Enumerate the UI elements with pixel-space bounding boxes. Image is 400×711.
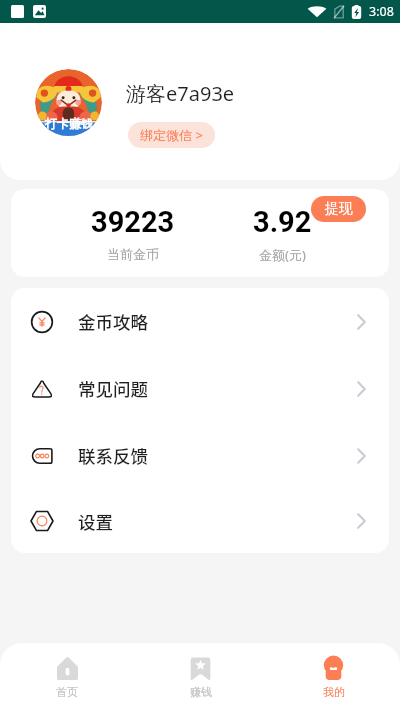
staticText: 3:08 <box>369 3 394 20</box>
staticText: 打卡赚钱 <box>45 116 93 131</box>
button[interactable]: 提现 <box>311 196 366 222</box>
button[interactable]: 常见问题 <box>11 355 389 422</box>
button[interactable]: 首页 <box>0 643 134 699</box>
button[interactable]: 赚钱 <box>134 643 267 699</box>
staticText: 赚钱 <box>190 685 212 699</box>
button[interactable]: 我的 <box>267 643 400 699</box>
staticText: 3.92 <box>253 205 312 239</box>
staticText: 首页 <box>56 685 78 699</box>
button[interactable]: 设置 <box>11 489 389 553</box>
staticText: 常见问题 <box>78 376 148 401</box>
staticText: 金币攻略 <box>78 309 148 334</box>
staticText: 绑定微信 > <box>140 126 203 144</box>
staticText: 39223 <box>91 205 175 239</box>
staticText: 游客e7a93e <box>126 80 235 107</box>
button[interactable]: 联系反馈 <box>11 422 389 489</box>
staticText: 联系反馈 <box>78 443 148 468</box>
staticText: 设置 <box>78 509 113 534</box>
button[interactable]: 绑定微信 > <box>128 122 215 148</box>
staticText: 金额(元) <box>259 246 306 264</box>
staticText: 提现 <box>325 200 353 218</box>
staticText: 当前金币 <box>107 246 159 262</box>
button[interactable]: 金币攻略 <box>11 288 389 355</box>
staticText: 我的 <box>323 685 345 699</box>
